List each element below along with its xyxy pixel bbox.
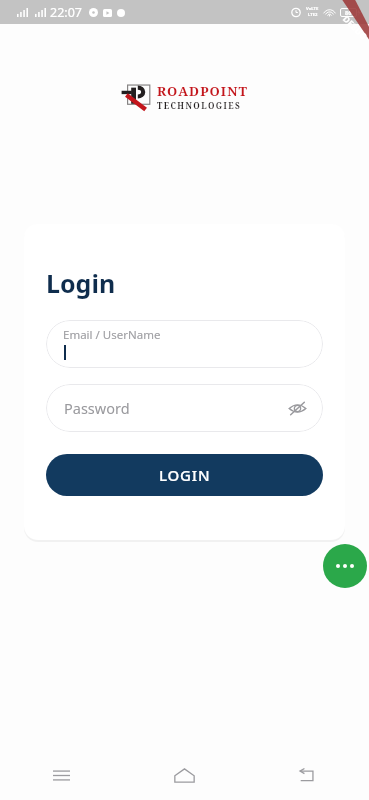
staticText: DEBUG	[340, 13, 369, 43]
button[interactable]: Show password	[283, 394, 311, 422]
staticText: LTE2	[308, 12, 318, 18]
button[interactable]: Recents	[0, 750, 123, 800]
button[interactable]: More options	[323, 544, 367, 588]
staticText: ROADPOINT	[157, 82, 249, 100]
staticText: Password	[64, 398, 130, 418]
staticText: LOGIN	[159, 465, 211, 485]
staticText: TECHNOLOGIES	[157, 100, 242, 111]
staticText: VoLTE	[306, 6, 319, 12]
staticText: 86	[345, 9, 352, 16]
button[interactable]: LOGIN	[46, 454, 323, 496]
staticText: Login	[46, 266, 116, 300]
staticText: 22:07	[50, 4, 82, 21]
button[interactable]: Email / UserName	[46, 320, 323, 368]
button[interactable]: Home	[123, 750, 246, 800]
button[interactable]: Back	[246, 750, 369, 800]
button[interactable]: Password	[46, 384, 323, 432]
staticText: Email / UserName	[63, 327, 161, 343]
